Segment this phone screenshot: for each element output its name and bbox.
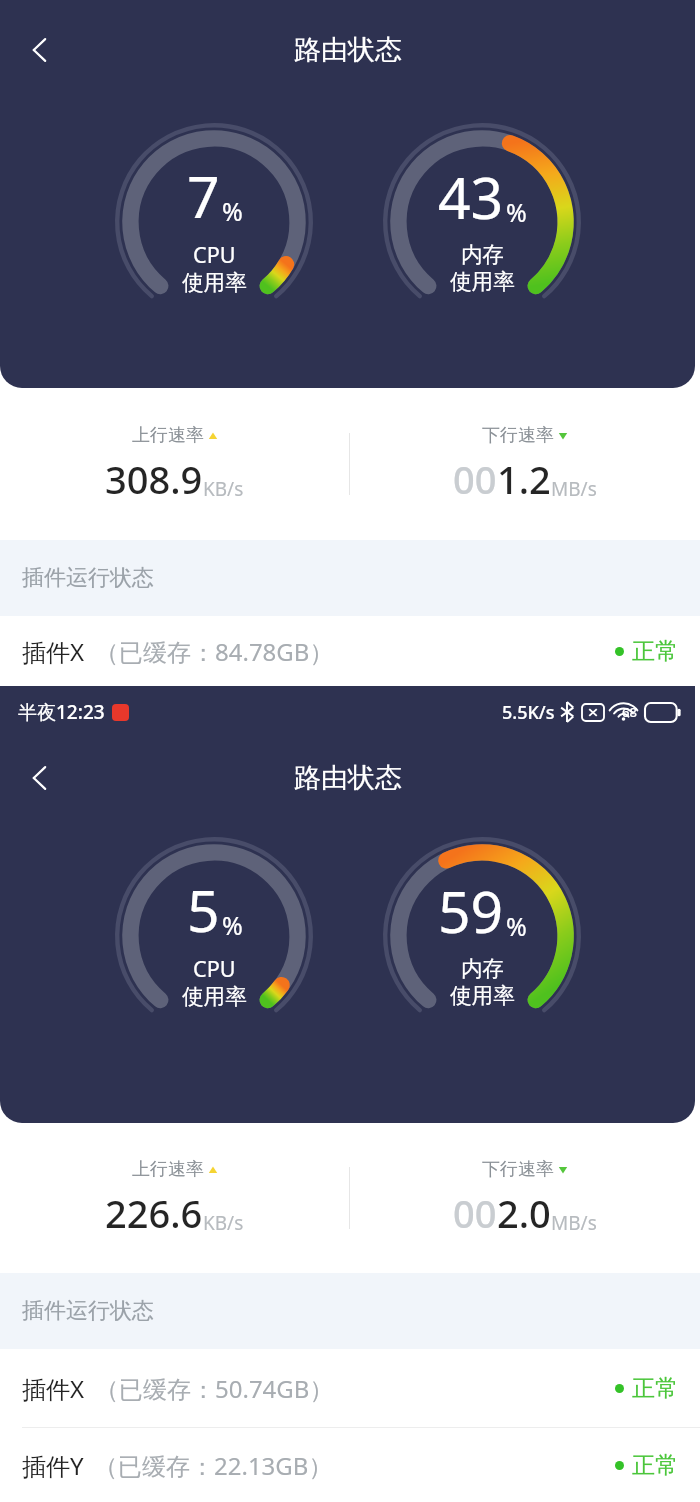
staticText: （已缓存：50.74GB）	[95, 1372, 334, 1405]
staticText: 下行速率	[482, 424, 554, 447]
staticText: 7	[187, 157, 220, 235]
staticText: 半夜12:23	[18, 699, 105, 725]
staticText: 插件运行状态	[22, 564, 154, 592]
staticText: %	[506, 909, 527, 943]
staticText: 使用率	[450, 982, 515, 1009]
staticText: 使用率	[182, 269, 247, 296]
button[interactable]: 插件Y	[0, 1428, 700, 1502]
staticText: %	[222, 908, 243, 942]
staticText: 43	[438, 158, 504, 236]
button[interactable]: 返回	[10, 20, 70, 80]
staticText: 内存	[461, 955, 505, 982]
staticText: 路由状态	[294, 761, 402, 795]
staticText: 插件X	[22, 1372, 85, 1405]
staticText: 使用率	[182, 983, 247, 1010]
button[interactable]: 上行速率	[0, 1123, 349, 1273]
staticText: 68	[622, 703, 637, 721]
staticText: KB/s	[203, 476, 244, 502]
staticText: 5.5K/s	[502, 700, 555, 725]
staticText: 00	[453, 453, 497, 505]
staticText: MB/s	[551, 476, 597, 502]
button[interactable]: 下行速率	[350, 388, 700, 540]
staticText: 路由状态	[294, 33, 402, 67]
staticText: 1.2	[497, 453, 551, 505]
staticText: 5	[187, 871, 220, 949]
staticText: （已缓存：84.78GB）	[95, 635, 334, 668]
staticText: 插件运行状态	[22, 1297, 154, 1325]
staticText: 正常	[632, 637, 678, 666]
staticText: 上行速率	[132, 424, 204, 447]
staticText: 2.0	[497, 1187, 551, 1239]
staticText: MB/s	[551, 1210, 597, 1236]
staticText: 226.6	[105, 1187, 203, 1239]
button[interactable]: 上行速率	[0, 388, 349, 540]
staticText: %	[506, 195, 527, 229]
staticText: CPU	[193, 954, 236, 983]
button[interactable]: 下行速率	[350, 1123, 700, 1273]
staticText: 使用率	[450, 268, 515, 295]
staticText: 内存	[461, 241, 505, 268]
staticText: 正常	[632, 1374, 678, 1403]
staticText: KB/s	[203, 1210, 244, 1236]
staticText: （已缓存：22.13GB）	[94, 1449, 333, 1482]
button[interactable]: 插件X	[0, 1349, 700, 1427]
staticText: 上行速率	[132, 1158, 204, 1181]
staticText: %	[222, 194, 243, 228]
staticText: 插件X	[22, 635, 85, 668]
staticText: 00	[453, 1187, 497, 1239]
staticText: 308.9	[105, 453, 203, 505]
button[interactable]: 插件X	[0, 616, 700, 686]
staticText: 插件Y	[22, 1449, 84, 1482]
button[interactable]: 返回	[10, 748, 70, 808]
staticText: 下行速率	[482, 1158, 554, 1181]
staticText: CPU	[193, 240, 236, 269]
staticText: 59	[438, 872, 504, 950]
staticText: 正常	[632, 1451, 678, 1480]
